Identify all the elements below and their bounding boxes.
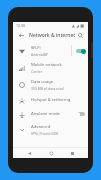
staticText: Hotspot & tethering xyxy=(31,97,71,103)
button[interactable]: Back xyxy=(16,30,26,40)
staticText: 355 MB of data used xyxy=(31,86,64,91)
button[interactable]: Airplane mode off xyxy=(75,110,85,118)
button[interactable]: Back xyxy=(24,148,34,158)
staticText: VPN, Private DNS xyxy=(31,131,59,136)
staticText: Network & internet xyxy=(29,32,76,39)
button[interactable]: Hotspot & tethering xyxy=(13,93,88,107)
button[interactable]: Airplane mode xyxy=(13,107,88,121)
staticText: AndroidAP xyxy=(31,52,48,57)
button[interactable]: Advanced xyxy=(13,121,88,138)
staticText: Advanced xyxy=(31,124,51,130)
staticText: Mobile network xyxy=(31,62,62,68)
staticText: Carrier xyxy=(31,69,43,74)
button[interactable]: Recents xyxy=(67,148,77,158)
staticText: Wi‑Fi xyxy=(31,45,41,51)
staticText: Data usage xyxy=(31,79,54,85)
button[interactable]: Data usage xyxy=(13,76,88,93)
button[interactable]: Mobile network xyxy=(13,59,88,76)
button[interactable]: Wi‑Fi xyxy=(13,42,88,59)
button[interactable]: Wi-Fi on xyxy=(75,47,85,55)
button[interactable]: Search xyxy=(76,30,85,40)
button[interactable]: Home xyxy=(46,148,56,158)
staticText: 12:30 xyxy=(16,23,25,28)
staticText: Airplane mode xyxy=(31,111,60,117)
